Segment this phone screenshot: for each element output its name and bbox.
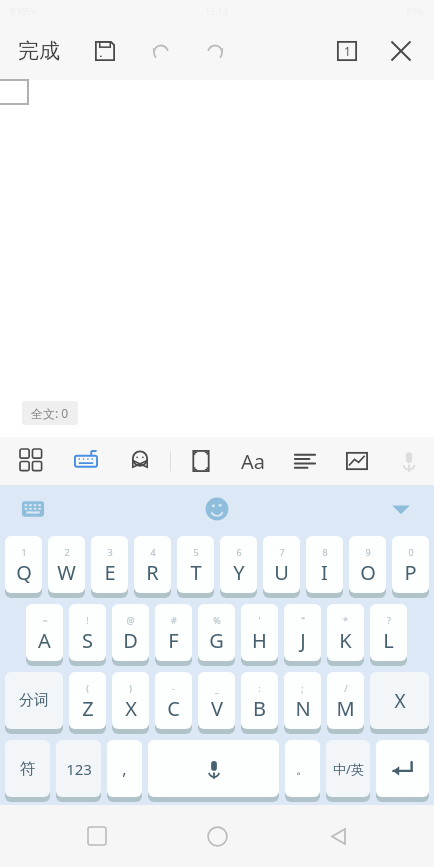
button[interactable]: Close — [382, 32, 420, 70]
staticText: T — [190, 559, 202, 586]
button[interactable]: 4 — [134, 536, 171, 593]
staticText: O — [360, 559, 376, 586]
button[interactable]: 符 — [5, 740, 50, 797]
staticText: ) — [129, 682, 132, 694]
button[interactable]: Page — [185, 445, 217, 477]
staticText: : — [258, 682, 261, 694]
button[interactable]: 1 — [5, 536, 42, 593]
staticText: R — [146, 559, 159, 586]
button[interactable]: Grid — [16, 445, 48, 477]
button[interactable]: ' — [241, 604, 278, 661]
button[interactable]: Save — [86, 32, 124, 70]
button[interactable]: Back — [314, 812, 362, 860]
staticText: 8 — [322, 546, 328, 558]
staticText: 1 — [21, 546, 27, 558]
button[interactable]: / — [327, 672, 364, 729]
button[interactable]: # — [155, 604, 192, 661]
button[interactable]: 7 — [263, 536, 300, 593]
staticText: 123 — [66, 759, 92, 779]
button[interactable]: Enter — [376, 740, 429, 797]
staticText: H — [252, 627, 267, 654]
button[interactable]: Keyboard — [70, 445, 102, 477]
button[interactable]: % — [198, 604, 235, 661]
staticText: _ — [215, 682, 219, 694]
staticText: M — [336, 695, 355, 722]
button[interactable]: 完成 — [14, 34, 64, 68]
button[interactable]: Align — [289, 445, 321, 477]
button[interactable]: : — [241, 672, 278, 729]
button[interactable]: Voice input — [148, 740, 279, 797]
button[interactable]: Recents — [73, 812, 121, 860]
button[interactable]: 6 — [220, 536, 257, 593]
button[interactable]: 中/英 — [326, 740, 370, 797]
button[interactable]: Undo — [142, 32, 180, 70]
button[interactable]: @ — [112, 604, 149, 661]
button[interactable]: Hide keyboard — [386, 494, 416, 524]
button[interactable]: - — [155, 672, 192, 729]
staticText: - — [172, 682, 175, 694]
staticText: 4 — [150, 546, 156, 558]
button[interactable]: 9 — [349, 536, 386, 593]
staticText: C — [167, 695, 180, 722]
button[interactable]: 0 — [392, 536, 429, 593]
staticText: " — [301, 614, 305, 626]
button[interactable]: Emoji — [124, 445, 156, 477]
button[interactable]: 全文: 0 — [22, 401, 78, 425]
button[interactable]: ? — [370, 604, 407, 661]
staticText: ' — [258, 614, 261, 626]
staticText: G — [209, 627, 224, 654]
staticText: Q — [16, 559, 32, 586]
button[interactable]: " — [284, 604, 321, 661]
button[interactable]: _ — [198, 672, 235, 729]
staticText: @ — [126, 614, 135, 626]
staticText: ! — [86, 614, 89, 626]
button[interactable]: Home — [193, 812, 241, 860]
staticText: Aa — [241, 448, 265, 475]
staticText: , — [122, 758, 127, 780]
staticText: S — [82, 627, 93, 654]
staticText: 9 — [365, 546, 371, 558]
button[interactable]: ! — [69, 604, 106, 661]
button[interactable]: 。 — [285, 740, 320, 797]
button[interactable]: Image — [341, 445, 373, 477]
staticText: 5 — [193, 546, 199, 558]
button[interactable]: * — [327, 604, 364, 661]
button[interactable]: Page count — [328, 32, 366, 70]
staticText: 1 — [344, 43, 351, 59]
staticText: V — [211, 695, 223, 722]
staticText: I — [321, 559, 328, 586]
staticText: # — [171, 614, 177, 626]
button[interactable]: ; — [284, 672, 321, 729]
button[interactable]: 分词 — [5, 672, 63, 729]
button[interactable]: 5 — [177, 536, 214, 593]
button[interactable]: Font size — [237, 445, 269, 477]
button[interactable]: 123 — [56, 740, 101, 797]
button[interactable]: 2 — [48, 536, 85, 593]
button[interactable]: Emoji — [201, 493, 233, 525]
button[interactable]: 8 — [306, 536, 343, 593]
staticText: ; — [301, 682, 304, 694]
button[interactable]: 3 — [91, 536, 128, 593]
staticText: 全文: 0 — [31, 405, 69, 421]
staticText: 中/英 — [333, 760, 364, 778]
button[interactable]: ~ — [26, 604, 63, 661]
button[interactable]: ) — [112, 672, 149, 729]
button[interactable]: ( — [69, 672, 106, 729]
staticText: 6 — [236, 546, 242, 558]
staticText: F — [168, 627, 179, 654]
button[interactable]: X — [370, 672, 429, 729]
staticText: D — [123, 627, 138, 654]
button[interactable]: Redo — [196, 32, 234, 70]
staticText: 7 — [279, 546, 285, 558]
staticText: U — [274, 559, 289, 586]
staticText: N — [295, 695, 311, 722]
button[interactable]: Keyboard settings — [18, 494, 48, 524]
staticText: J — [300, 627, 306, 654]
button[interactable]: Voice — [393, 445, 425, 477]
button[interactable]: , — [107, 740, 142, 797]
staticText: P — [404, 559, 417, 586]
staticText: 3 — [107, 546, 113, 558]
